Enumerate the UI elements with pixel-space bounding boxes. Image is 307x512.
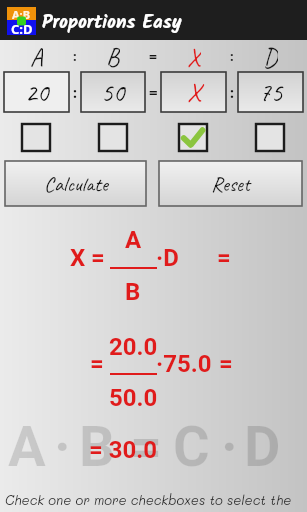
staticText: C:D: [11, 20, 33, 35]
button[interactable]: Select X: [179, 124, 207, 151]
staticText: 50: [101, 76, 125, 109]
staticText: =: [217, 244, 231, 272]
staticText: Reset: [211, 171, 250, 197]
staticText: Check one or more checkboxes to select t…: [5, 491, 292, 508]
staticText: =: [130, 414, 163, 480]
staticText: A: [8, 414, 46, 480]
staticText: =: [90, 350, 104, 378]
staticText: ·: [221, 414, 238, 480]
button[interactable]: 50: [81, 72, 145, 112]
staticText: B: [106, 42, 120, 70]
staticText: 75: [259, 76, 283, 109]
staticText: X: [187, 42, 201, 70]
staticText: X: [187, 76, 201, 109]
staticText: B: [79, 414, 115, 480]
button[interactable]: 20: [4, 72, 69, 112]
button[interactable]: Select D: [256, 124, 284, 151]
staticText: B: [125, 278, 141, 306]
staticText: X: [70, 244, 86, 272]
staticText: = 30.0: [89, 436, 158, 464]
staticText: :: [230, 83, 234, 102]
staticText: 20.0: [109, 333, 158, 361]
staticText: Proportions Easy: [42, 8, 182, 38]
staticText: A: [125, 226, 142, 254]
staticText: :: [73, 83, 77, 102]
staticText: ·75.0: [156, 350, 212, 378]
staticText: A: [30, 42, 43, 70]
staticText: Calculate: [44, 171, 108, 197]
button[interactable]: Calculate: [5, 161, 146, 206]
staticText: C: [173, 414, 210, 480]
button[interactable]: App icon: [0, 0, 307, 40]
button[interactable]: X: [161, 72, 226, 112]
other: App icon: [7, 7, 36, 35]
staticText: 50.0: [109, 384, 158, 412]
staticText: D: [244, 414, 281, 480]
staticText: D: [263, 42, 278, 70]
staticText: =: [149, 82, 158, 102]
staticText: ·: [54, 414, 71, 480]
button[interactable]: Reset: [159, 161, 302, 206]
staticText: A:B: [12, 7, 31, 20]
staticText: =: [219, 350, 233, 378]
button[interactable]: Select B: [99, 124, 127, 151]
button[interactable]: 75: [238, 72, 303, 112]
staticText: =: [91, 244, 105, 272]
button[interactable]: Select A: [22, 124, 50, 151]
staticText: ·D: [156, 244, 179, 272]
staticText: :: [73, 47, 77, 65]
staticText: =: [149, 47, 158, 66]
staticText: :: [230, 47, 234, 65]
staticText: 20: [25, 76, 49, 109]
